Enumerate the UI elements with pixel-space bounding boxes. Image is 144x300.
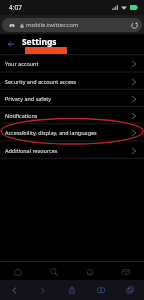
button[interactable]: Additional resources	[0, 142, 144, 159]
staticText: Accessibility, display, and languages	[5, 129, 97, 136]
staticText: Settings	[22, 36, 57, 47]
staticText: Notifications	[5, 112, 38, 119]
staticText: mobile.twitter.com	[26, 21, 79, 29]
button[interactable]: Accessibility, display, and languages	[0, 124, 144, 141]
button[interactable]: Security and account access	[0, 73, 144, 90]
button[interactable]: Search	[36, 262, 72, 281]
button[interactable]: Back	[0, 280, 28, 300]
button[interactable]: Messages	[108, 262, 144, 281]
staticText: Privacy and safety	[5, 95, 52, 102]
staticText: Security and account access	[5, 78, 77, 85]
button[interactable]: Privacy and safety	[0, 90, 144, 107]
button[interactable]: Back	[3, 36, 19, 52]
button[interactable]: Notifications	[72, 262, 108, 281]
button[interactable]: Your account	[0, 55, 144, 72]
other: Incognito	[9, 22, 15, 28]
button[interactable]: Forward	[28, 280, 57, 300]
button[interactable]: Home	[0, 262, 36, 281]
button[interactable]: Notifications	[0, 107, 144, 124]
button[interactable]: Reload	[128, 19, 141, 32]
button[interactable]: Share	[57, 280, 86, 300]
staticText: Additional resources	[5, 147, 58, 154]
button[interactable]: Bookmarks	[86, 280, 115, 300]
button[interactable]: Tabs	[115, 280, 144, 300]
button[interactable]: Incognito	[2, 18, 142, 32]
staticText: Your account	[5, 60, 39, 67]
staticText: 4:07	[9, 3, 22, 12]
